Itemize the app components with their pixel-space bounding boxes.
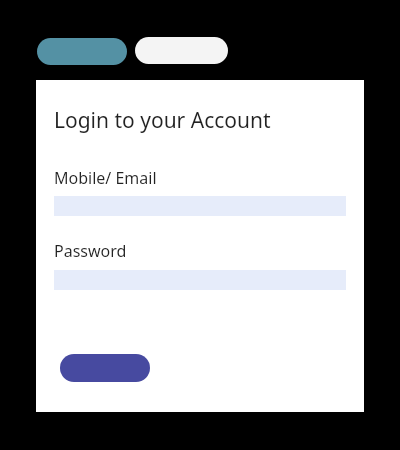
button[interactable]: Sign up tab: [135, 37, 228, 64]
button[interactable]: Login: [60, 354, 150, 382]
button[interactable]: Login tab: [37, 38, 127, 65]
staticText: Login to your Account: [54, 106, 271, 135]
staticText: Mobile/ Email: [54, 167, 157, 189]
staticText: Password: [54, 240, 127, 262]
